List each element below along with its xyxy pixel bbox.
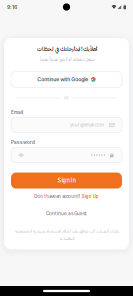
staticText: Don't have an account?: [34, 194, 80, 199]
staticText: بإنشاء الحساب، أنت توافق على أحكام الاست…: [14, 228, 118, 234]
staticText: Password: [11, 139, 35, 145]
staticText: 9:16: [7, 4, 17, 10]
button[interactable]: Continue with Google: [11, 71, 122, 87]
staticText: Sign Up: [82, 194, 99, 199]
staticText: الخاصة بنا: [59, 235, 74, 241]
staticText: your@email.com: [70, 122, 104, 128]
staticText: Sign In: [57, 177, 75, 184]
button[interactable]: Don't have an account?: [11, 193, 122, 200]
button[interactable]: Sign In: [11, 172, 122, 188]
staticText: أهلاً بك! ابدأ رحلتك في لحظات: [36, 45, 96, 53]
staticText: Email: [11, 109, 23, 115]
staticText: or: [64, 95, 69, 100]
staticText: Continue with Google: [37, 76, 88, 82]
staticText: سجّل دخولك أو أنشئ حساباً جديداً: [39, 56, 94, 62]
staticText: Continue as Guest: [46, 211, 87, 216]
button[interactable]: Continue as Guest: [11, 210, 122, 217]
